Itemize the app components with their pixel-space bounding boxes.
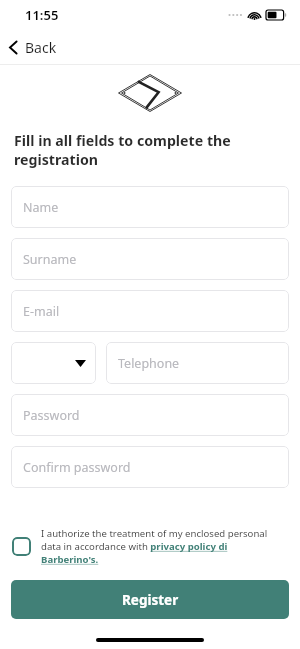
staticText: Surname (23, 251, 77, 268)
button[interactable]: Confirm password (11, 446, 289, 488)
button[interactable]: E-mail (11, 290, 289, 332)
staticText: I authorize the treatment of my enclosed… (41, 527, 286, 566)
staticText: E-mail (23, 303, 60, 320)
button[interactable]: Select country prefix (11, 342, 96, 384)
button[interactable]: Name (11, 186, 289, 228)
button[interactable]: Surname (11, 238, 289, 280)
button[interactable]: Authorize personal data treatment (0, 527, 300, 566)
button[interactable]: Telephone (106, 342, 289, 384)
staticText: Register (122, 591, 179, 609)
staticText: Password (23, 407, 80, 424)
staticText: Name (23, 199, 59, 216)
staticText: Telephone (118, 355, 180, 372)
button[interactable]: Register (11, 580, 289, 619)
staticText: Fill in all fields to complete the regis… (14, 131, 288, 169)
staticText: 11:55 (25, 6, 59, 24)
staticText: Back (25, 38, 57, 57)
other: Authorize personal data treatment (12, 537, 31, 556)
button[interactable]: Back (0, 34, 69, 61)
staticText: Confirm password (23, 459, 131, 476)
button[interactable]: Password (11, 394, 289, 436)
